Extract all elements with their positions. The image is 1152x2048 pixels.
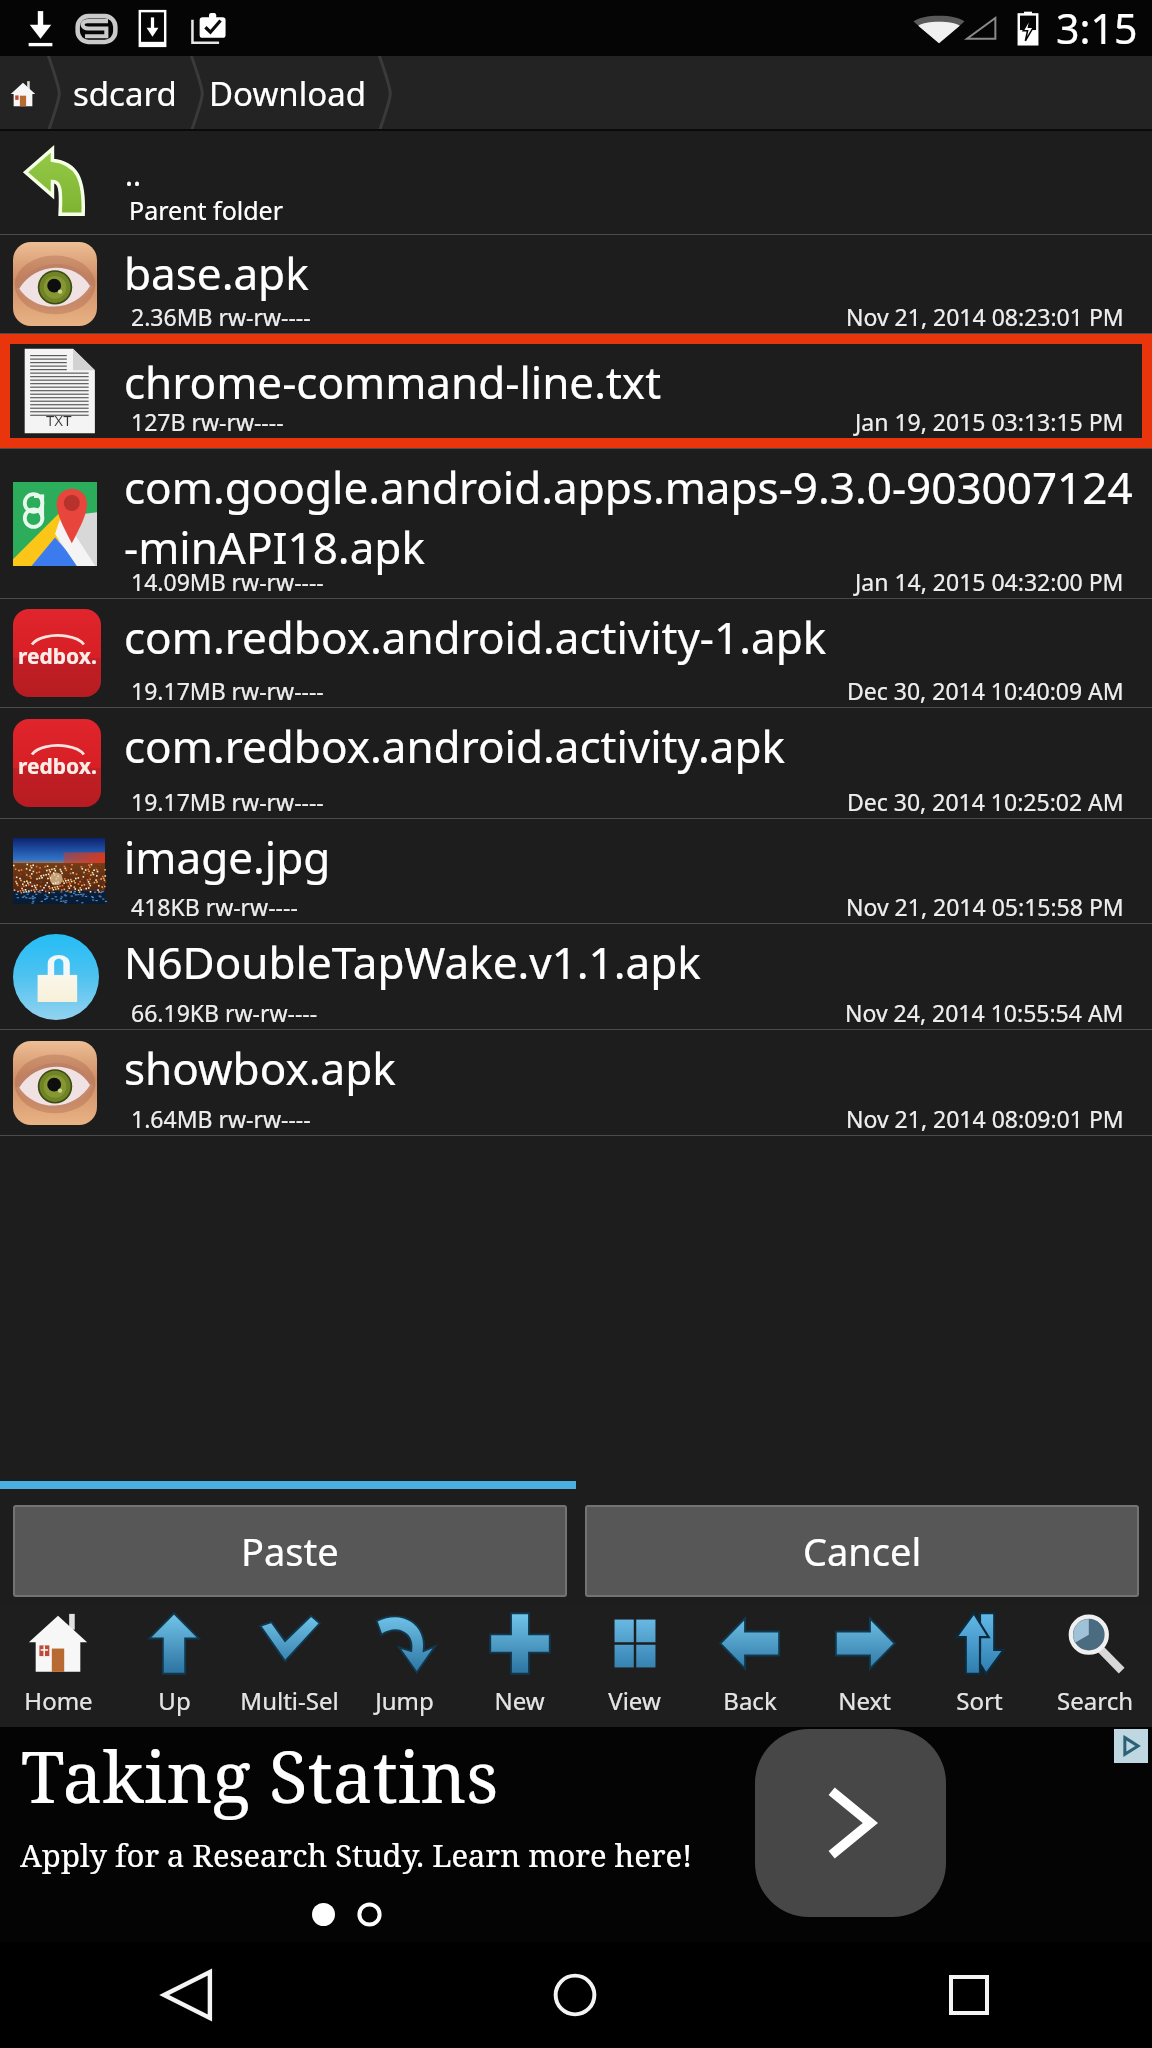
staticText: -minAPI18.apk [124, 517, 425, 577]
staticText: Nov 24, 2014 10:55:54 AM [845, 997, 1124, 1028]
staticText: redbox. [18, 642, 97, 671]
staticText: Back [723, 1684, 777, 1717]
staticText: redbox. [18, 752, 97, 781]
button[interactable]: Next [807, 1605, 922, 1727]
staticText: Dec 30, 2014 10:25:02 AM [847, 786, 1124, 817]
button[interactable]: showbox.apk [0, 1030, 1152, 1135]
staticText: Dec 30, 2014 10:40:09 AM [847, 675, 1124, 706]
staticText: base.apk [124, 243, 309, 303]
button[interactable]: com.google.android.apps.maps-9.3.0-90300… [0, 449, 1152, 598]
button[interactable]: sdcard [60, 56, 189, 131]
staticText: 19.17MB rw-rw---- [131, 786, 324, 817]
staticText: chrome-command-line.txt [124, 352, 662, 412]
staticText: Nov 21, 2014 08:23:01 PM [846, 301, 1124, 332]
staticText: Jump [375, 1684, 434, 1717]
button[interactable]: Paste [13, 1505, 567, 1597]
staticText: 14.09MB rw-rw---- [131, 566, 324, 597]
staticText: Up [158, 1684, 191, 1717]
staticText: 418KB rw-rw---- [131, 891, 298, 922]
staticText: Apply for a Research Study. Learn more h… [20, 1834, 693, 1876]
staticText: 3:15 [1056, 0, 1138, 56]
button[interactable]: Cancel [585, 1505, 1139, 1597]
button[interactable]: Recent apps [768, 1942, 1152, 2048]
staticText: 19.17MB rw-rw---- [131, 675, 324, 706]
button[interactable]: N6DoubleTapWake.v1.1.apk [0, 924, 1152, 1029]
button[interactable]: Back [0, 1942, 384, 2048]
staticText: Jan 14, 2015 04:32:00 PM [855, 566, 1124, 597]
staticText: Taking Statins [21, 1727, 499, 1824]
staticText: Sort [956, 1684, 1003, 1717]
staticText: New [494, 1684, 545, 1717]
button[interactable]: Home [0, 1605, 116, 1727]
button[interactable]: .. [0, 131, 1152, 234]
button[interactable]: Next ad [755, 1729, 946, 1917]
staticText: Search [1057, 1684, 1133, 1717]
staticText: 1.64MB rw-rw---- [131, 1103, 311, 1134]
staticText: Next [838, 1684, 891, 1717]
button[interactable]: redbox. [0, 708, 1152, 818]
staticText: .. [125, 154, 142, 195]
button[interactable]: base.apk [0, 235, 1152, 333]
button[interactable]: TXT [10, 344, 1142, 438]
staticText: Download [209, 71, 367, 116]
staticText: Parent folder [129, 193, 284, 227]
staticText: Nov 21, 2014 05:15:58 PM [846, 891, 1124, 922]
staticText: View [608, 1684, 661, 1717]
staticText: N6DoubleTapWake.v1.1.apk [124, 932, 701, 992]
button[interactable]: redbox. [0, 599, 1152, 707]
staticText: 66.19KB rw-rw---- [131, 997, 318, 1028]
button[interactable]: Jump [347, 1605, 462, 1727]
staticText: Paste [241, 1525, 339, 1577]
staticText: Cancel [803, 1525, 922, 1577]
staticText: com.redbox.android.activity-1.apk [124, 607, 827, 667]
button[interactable]: Download [203, 56, 377, 131]
button[interactable]: Sort [922, 1605, 1037, 1727]
staticText: TXT [46, 410, 72, 430]
staticText: Jan 19, 2015 03:13:15 PM [855, 406, 1124, 437]
staticText: Multi-Sel [240, 1684, 339, 1717]
staticText: showbox.apk [124, 1038, 396, 1098]
button[interactable]: Up [116, 1605, 232, 1727]
staticText: image.jpg [124, 827, 331, 887]
button[interactable]: Search [1037, 1605, 1152, 1727]
button[interactable]: View [577, 1605, 692, 1727]
staticText: sdcard [73, 71, 177, 116]
button[interactable]: Back [692, 1605, 807, 1727]
button[interactable]: Home [384, 1942, 768, 2048]
staticText: com.redbox.android.activity.apk [124, 716, 786, 776]
staticText: Home [24, 1684, 93, 1717]
staticText: com.google.android.apps.maps-9.3.0-90300… [124, 457, 1133, 517]
button[interactable]: image.jpg [0, 819, 1152, 923]
button[interactable]: Home [0, 56, 46, 131]
staticText: 2.36MB rw-rw---- [131, 301, 311, 332]
staticText: 127B rw-rw---- [131, 406, 284, 437]
staticText: Nov 21, 2014 08:09:01 PM [846, 1103, 1124, 1134]
button[interactable]: Multi-Sel [232, 1605, 347, 1727]
button[interactable]: New [462, 1605, 577, 1727]
